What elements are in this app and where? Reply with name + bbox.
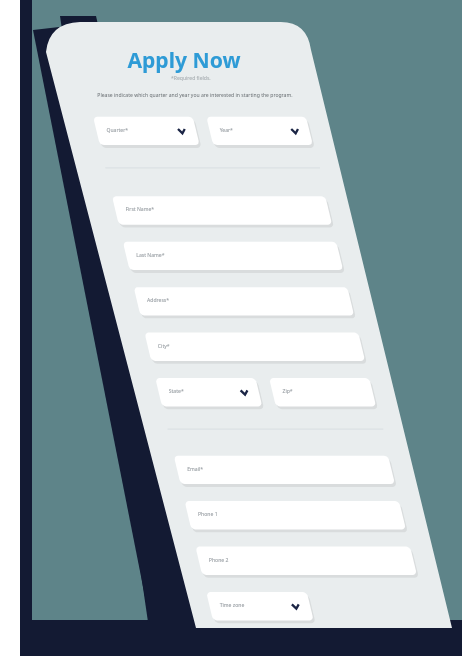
button[interactable]: Apply Now application form on phone xyxy=(0,0,462,656)
